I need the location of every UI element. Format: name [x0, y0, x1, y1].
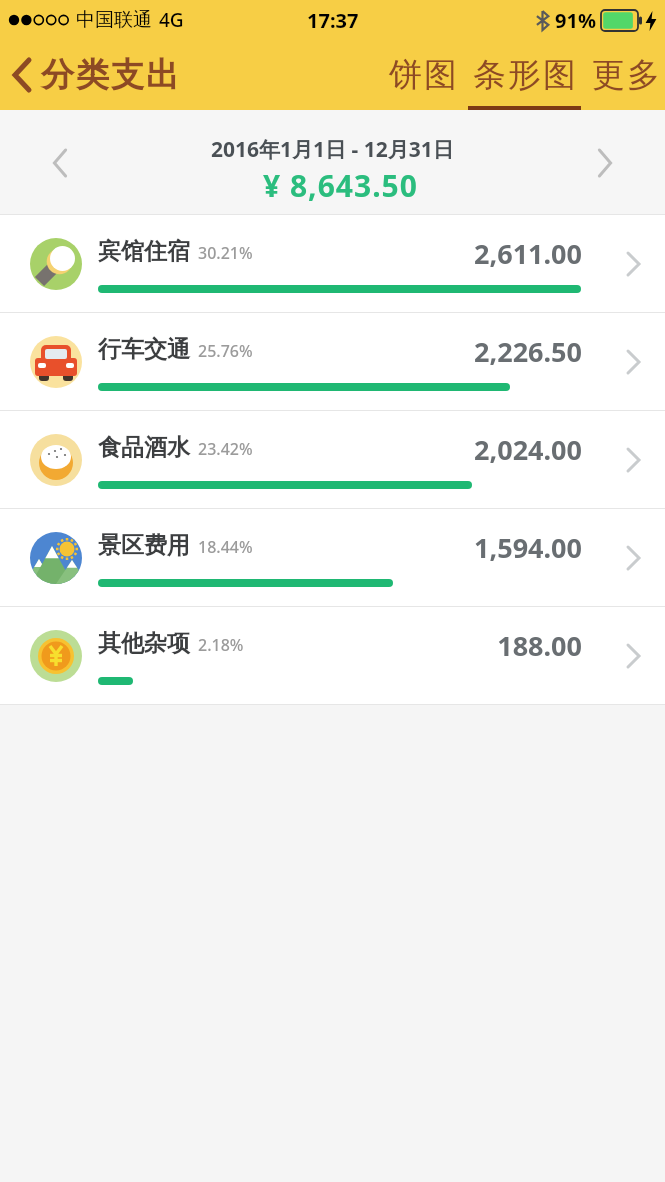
button[interactable]: 更多 [587, 54, 665, 96]
staticText: 23.42% [198, 438, 253, 460]
staticText: 更多 [591, 54, 661, 96]
staticText: 188.00 [497, 627, 582, 664]
staticText: 行车交通 [98, 335, 190, 364]
staticText: 其他杂项 [98, 629, 190, 658]
staticText: 条形图 [472, 54, 577, 96]
staticText: 2.18% [198, 634, 244, 656]
staticText: 食品酒水 [98, 433, 190, 462]
button[interactable]: 分类支出 [12, 54, 180, 96]
staticText: 2,024.00 [474, 431, 582, 468]
staticText: 30.21% [198, 242, 253, 264]
button[interactable]: 景区费用 [0, 509, 665, 606]
button[interactable]: 行车交通 [0, 313, 665, 410]
staticText: 17:37 [307, 7, 359, 34]
staticText: 18.44% [198, 536, 253, 558]
staticText: 4G [159, 7, 184, 33]
staticText: 2,611.00 [474, 235, 582, 272]
staticText: 91% [555, 7, 596, 34]
staticText: 2016年1月1日 - 12月31日 [211, 135, 454, 164]
staticText: 中国联通 [76, 8, 152, 32]
button[interactable]: 条形图 [472, 54, 577, 96]
staticText: 饼图 [388, 54, 458, 96]
staticText: 分类支出 [40, 54, 180, 96]
staticText: 1,594.00 [474, 529, 582, 566]
button[interactable]: 饼图 [380, 54, 466, 96]
staticText: ¥ 8,643.50 [263, 165, 418, 206]
button[interactable]: 宾馆住宿 [0, 215, 665, 312]
button[interactable]: 其他杂项 [0, 607, 665, 704]
staticText: 2,226.50 [474, 333, 582, 370]
staticText: 宾馆住宿 [98, 237, 190, 266]
button[interactable]: 食品酒水 [0, 411, 665, 508]
staticText: 景区费用 [98, 531, 190, 560]
staticText: 25.76% [198, 340, 253, 362]
